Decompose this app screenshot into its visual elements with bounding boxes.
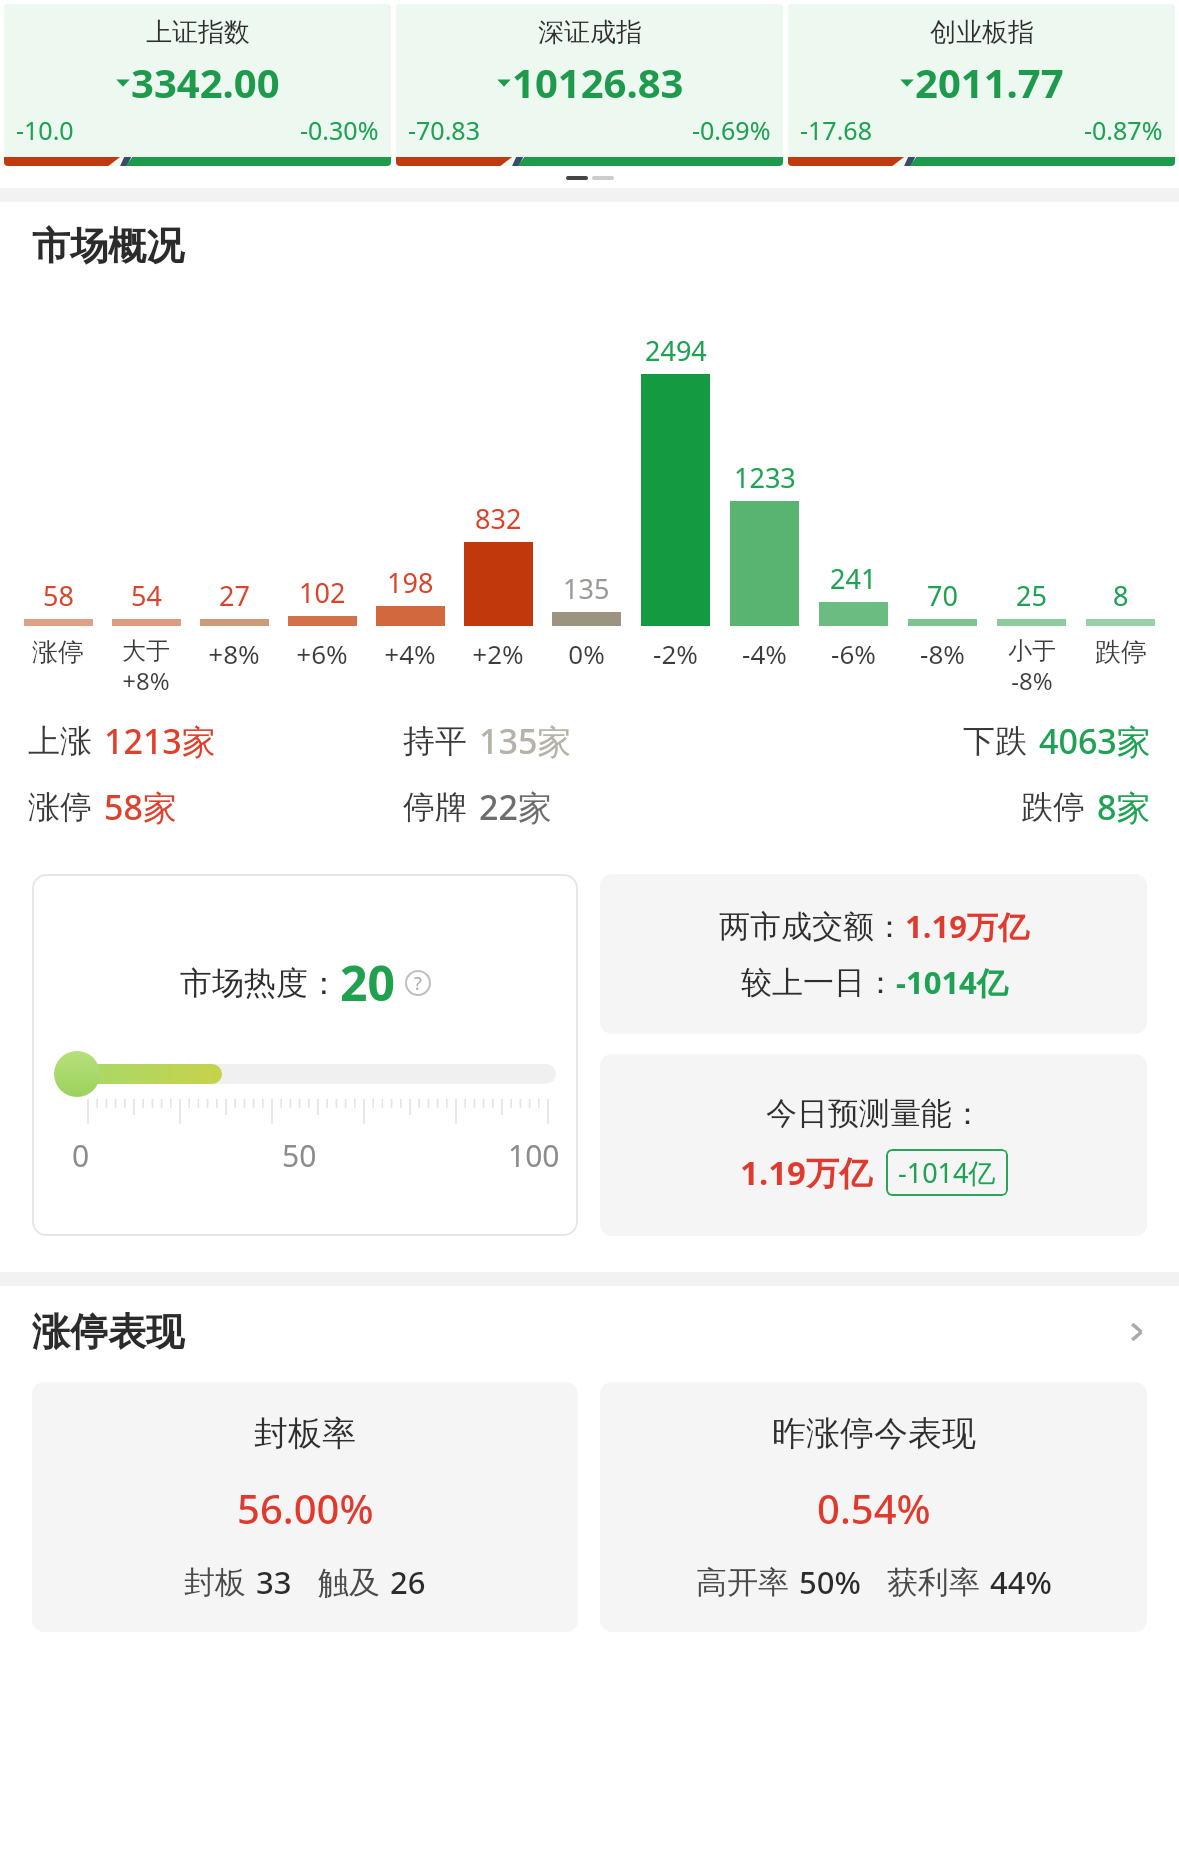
staticText: 50% [799,1561,861,1603]
staticText: 832 [475,500,522,537]
staticText: 2011.77 [915,55,1064,109]
staticText: 54 [131,577,162,614]
staticText: +4% [384,636,436,671]
staticText: -0.87% [1084,113,1163,147]
staticText: 2494 [645,332,707,369]
staticText: 封板率 [254,1412,356,1455]
staticText: 8家 [1097,784,1151,830]
other: 查看更多 [1123,1318,1151,1346]
button[interactable]: 深证成指 [396,4,783,166]
button[interactable]: 两市成交额： [600,874,1147,1034]
staticText: 大于 +8% [122,636,170,697]
staticText: 上涨 [28,721,92,761]
staticText: 涨停 [32,636,84,669]
staticText: 50 [282,1135,317,1176]
staticText: +8% [208,636,260,671]
staticText: -0.69% [692,113,771,147]
staticText: 8 [1113,577,1129,614]
staticText: 跌停 [1021,787,1085,827]
staticText: 56.00% [237,1481,374,1535]
staticText: -17.68 [800,113,872,147]
staticText: 26 [390,1561,426,1603]
staticText: 10126.83 [512,55,684,109]
staticText: 今日预测量能： [766,1094,983,1133]
staticText: 涨停 [28,787,92,827]
button[interactable]: 封板率 [32,1382,578,1632]
button[interactable]: 涨停表现 [0,1308,1179,1356]
staticText: 市场概况 [32,222,184,270]
staticText: -4% [742,636,787,671]
staticText: 33 [256,1561,292,1603]
staticText: 241 [830,560,877,597]
button[interactable]: 上证指数 [4,4,391,166]
staticText: 上证指数 [146,16,250,49]
button[interactable]: 创业板指 [788,4,1175,166]
staticText: 22家 [479,784,552,830]
staticText: 两市成交额： [719,907,905,946]
staticText: 深证成指 [538,16,642,49]
staticText: 58 [43,577,74,614]
staticText: 涨停表现 [32,1308,1123,1356]
button[interactable]: 市场热度： [32,874,578,1236]
staticText: 市场热度： [180,963,340,1003]
staticText: 小于 -8% [1008,636,1056,697]
staticText: +2% [472,636,524,671]
staticText: -0.30% [300,113,379,147]
staticText: 下跌 [963,721,1027,761]
staticText: -1014亿 [896,961,1008,1003]
staticText: 封板 [184,1563,246,1602]
staticText: 跌停 [1095,636,1147,669]
staticText: 70 [927,577,958,614]
staticText: 1233 [734,459,796,496]
staticText: ? [414,971,422,996]
staticText: -70.83 [408,113,480,147]
button[interactable]: 今日预测量能： [600,1054,1147,1236]
staticText: 4063家 [1039,718,1151,764]
staticText: -8% [920,636,965,671]
staticText: 25 [1016,577,1047,614]
staticText: -6% [831,636,876,671]
staticText: 100 [508,1135,560,1176]
staticText: 1213家 [104,718,216,764]
staticText: 停牌 [403,787,467,827]
staticText: 较上一日： [741,963,896,1002]
staticText: -1014亿 [898,1154,996,1191]
staticText: +6% [296,636,348,671]
staticText: 1.19万亿 [905,905,1029,947]
staticText: 持平 [403,721,467,761]
staticText: 昨涨停今表现 [772,1412,976,1455]
staticText: 高开率 [696,1563,789,1602]
staticText: 3342.00 [131,55,280,109]
button[interactable]: 说明 [405,970,431,996]
staticText: 58家 [104,784,177,830]
staticText: 创业板指 [930,16,1034,49]
staticText: 0% [568,636,605,671]
staticText: -2% [653,636,698,671]
staticText: 1.19万亿 [740,1150,872,1195]
staticText: 20 [340,950,395,1015]
staticText: 获利率 [887,1563,980,1602]
staticText: 0.54% [817,1481,931,1535]
staticText: 触及 [318,1563,380,1602]
staticText: 198 [387,564,434,601]
staticText: 44% [990,1561,1052,1603]
staticText: 135 [563,570,610,607]
staticText: 135家 [479,718,572,764]
button[interactable]: 昨涨停今表现 [600,1382,1147,1632]
staticText: 0 [72,1135,90,1176]
staticText: -10.0 [16,113,74,147]
staticText: 102 [299,574,346,611]
staticText: 27 [219,577,250,614]
